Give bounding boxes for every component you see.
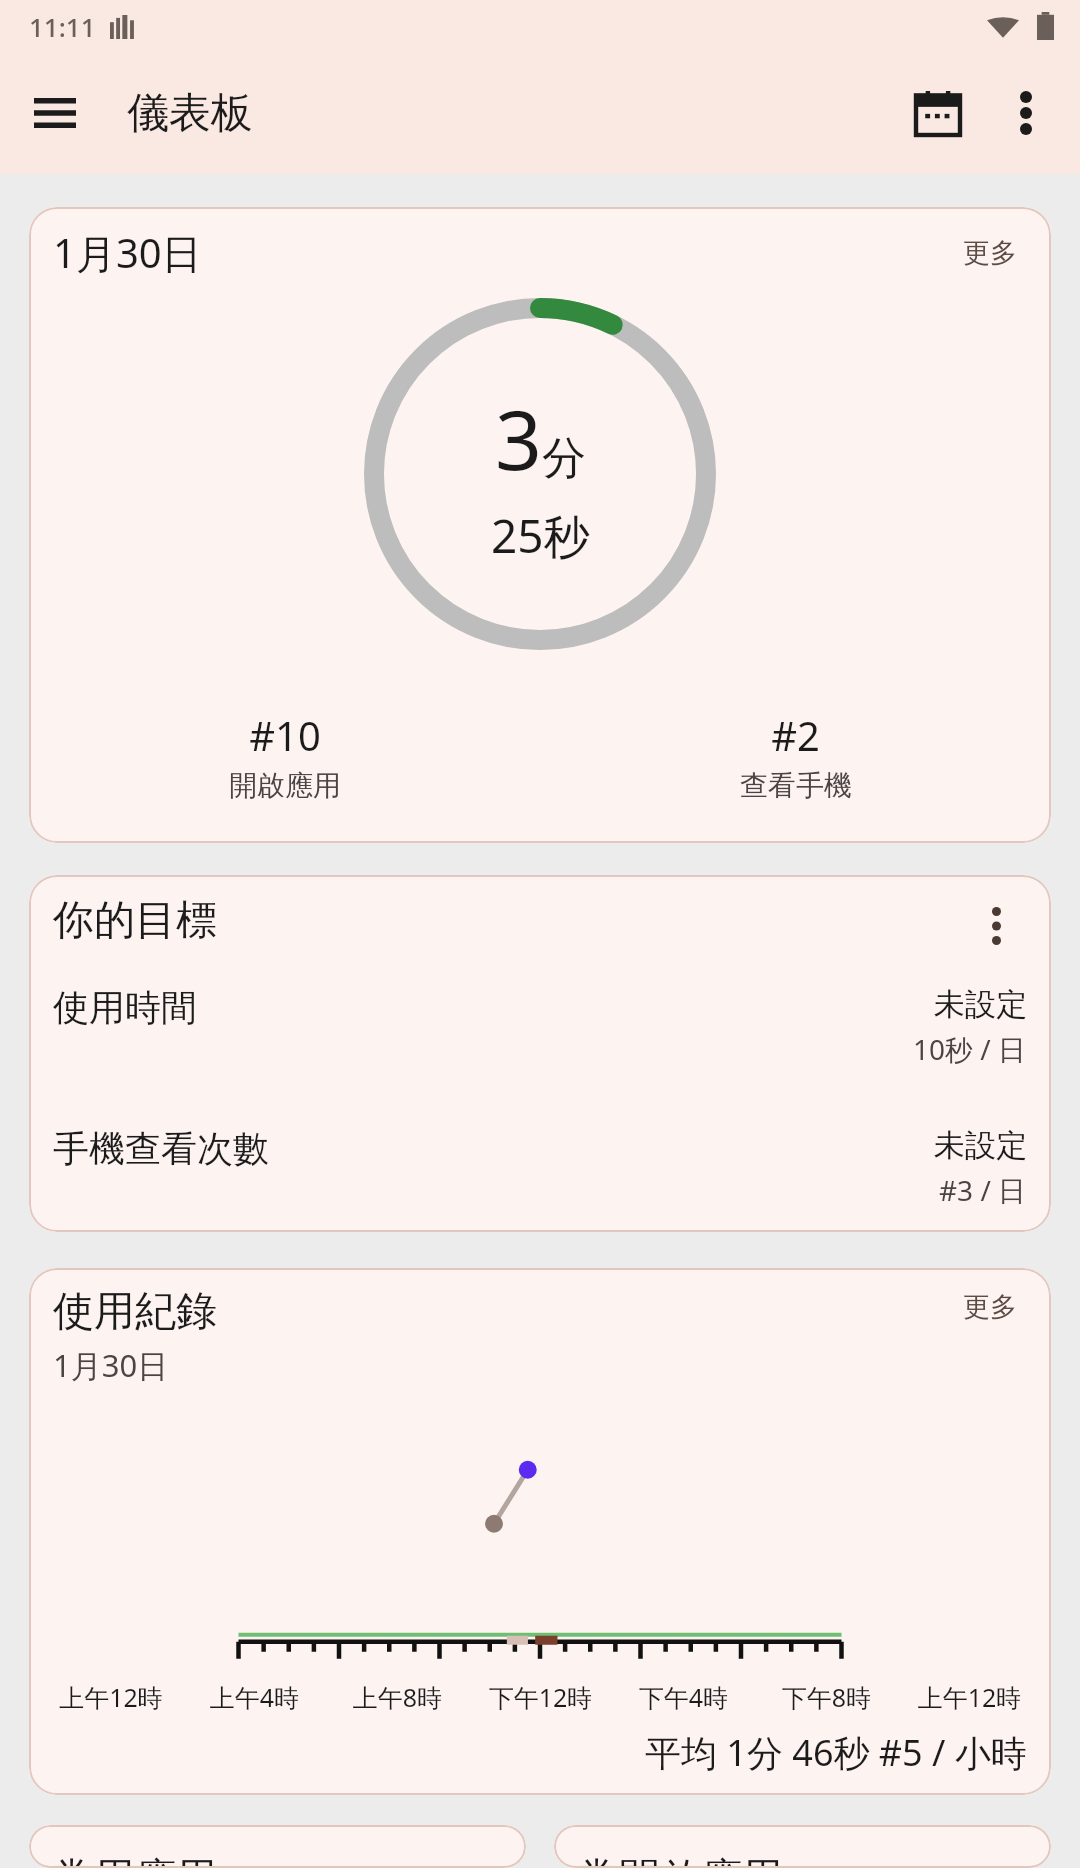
staticText: 上午8時	[326, 1680, 469, 1714]
staticText: 上午4時	[183, 1680, 326, 1714]
button[interactable]: More options	[982, 69, 1070, 157]
staticText: 查看手機	[740, 768, 852, 803]
staticText: 常開啟應用	[578, 1853, 783, 1868]
staticText: 11:11	[29, 9, 96, 44]
staticText: 1月30日	[53, 1344, 169, 1386]
staticText: 使用紀錄	[53, 1286, 217, 1338]
staticText: 下午8時	[755, 1680, 898, 1714]
staticText: 分	[542, 431, 586, 486]
staticText: 3	[495, 382, 542, 494]
staticText: #10	[249, 708, 321, 762]
button[interactable]: 使用時間	[53, 985, 1027, 1068]
button[interactable]: 更多	[957, 232, 1023, 274]
staticText: #2	[771, 708, 820, 762]
staticText: 未設定	[934, 1126, 1027, 1165]
button[interactable]: 手機查看次數	[53, 1126, 1027, 1209]
staticText: 手機查看次數	[53, 1126, 269, 1171]
staticText: 上午12時	[39, 1680, 183, 1714]
staticText: 你的目標	[53, 895, 217, 947]
staticText: 下午4時	[612, 1680, 755, 1714]
button[interactable]: 常用應用	[29, 1825, 526, 1868]
staticText: 上午12時	[898, 1680, 1041, 1714]
staticText: 10秒 / 日	[913, 1030, 1027, 1068]
button[interactable]: 1月30日	[29, 207, 1051, 843]
staticText: 開啟應用	[229, 768, 341, 803]
button[interactable]: Open navigation menu	[14, 72, 96, 154]
staticText: 使用時間	[53, 985, 197, 1030]
staticText: 未設定	[934, 985, 1027, 1024]
button[interactable]: #10	[29, 708, 540, 803]
staticText: 儀表板	[127, 87, 253, 140]
staticText: 常用應用	[53, 1853, 217, 1868]
button[interactable]: Pick date	[894, 69, 982, 157]
button[interactable]: 更多	[957, 1286, 1023, 1328]
staticText: 25秒	[491, 504, 590, 567]
staticText: 更多	[963, 236, 1017, 270]
button[interactable]: 常開啟應用	[554, 1825, 1051, 1868]
staticText: 下午12時	[469, 1680, 612, 1714]
staticText: 更多	[963, 1290, 1017, 1324]
staticText: #3 / 日	[939, 1171, 1027, 1209]
button[interactable]: #2	[540, 708, 1051, 803]
staticText: 1月30日	[53, 225, 202, 280]
button[interactable]: Goal options	[965, 895, 1027, 957]
staticText: 平均 1分 46秒 #5 / 小時	[645, 1728, 1027, 1777]
